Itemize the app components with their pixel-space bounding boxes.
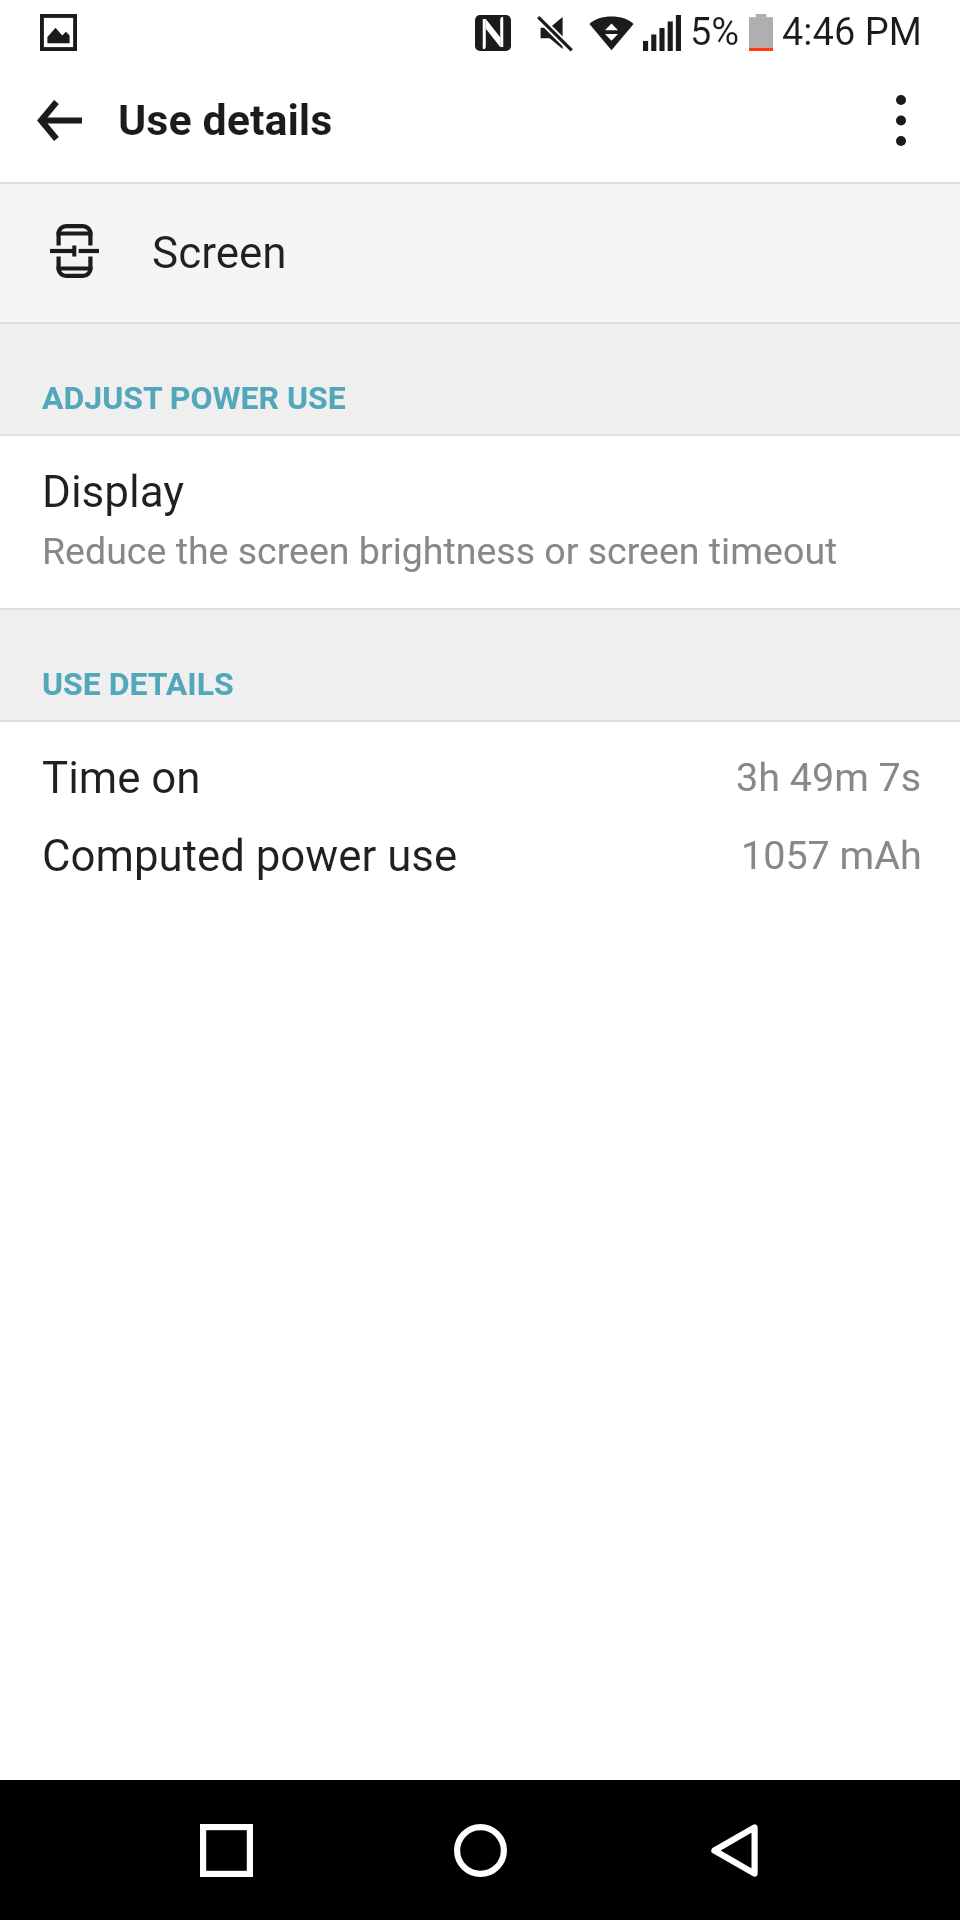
button[interactable]: Recent apps [146,1780,306,1920]
staticText: 1057 mAh [741,832,922,878]
button[interactable]: Screen [0,184,960,322]
staticText: Screen [152,227,287,279]
button[interactable]: Display [0,436,960,608]
staticText: Time on [42,752,201,803]
staticText: Display [42,466,185,518]
staticText: USE DETAILS [42,665,234,703]
button[interactable]: Computed power use [0,816,960,894]
staticText: Use details [118,95,333,145]
button[interactable]: Home [400,1780,560,1920]
button[interactable]: Back [654,1780,814,1920]
button[interactable]: Time on [0,738,960,816]
button[interactable]: Navigate up [17,77,103,163]
staticText: Computed power use [42,830,458,881]
staticText: ADJUST POWER USE [42,379,346,417]
staticText: Reduce the screen brightness or screen t… [42,529,838,573]
staticText: 5% [690,10,740,55]
button[interactable]: More options [859,78,943,162]
staticText: 3h 49m 7s [736,754,922,800]
staticText: 4:46 PM [782,10,922,55]
